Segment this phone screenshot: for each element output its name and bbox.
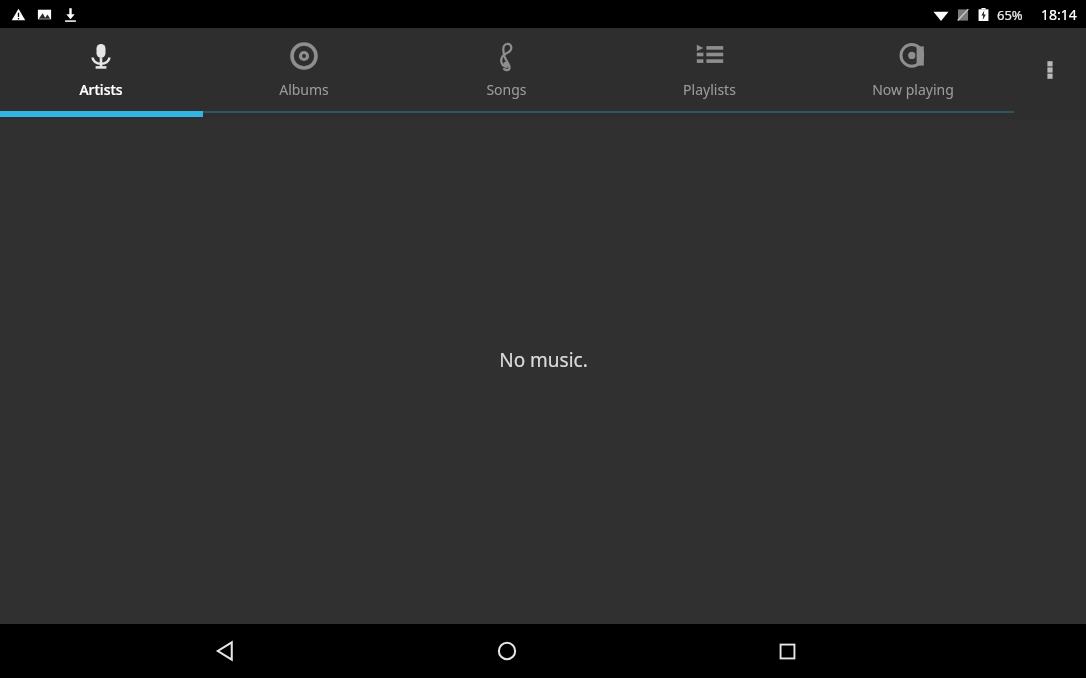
staticText: Now playing [872,80,954,99]
staticText: No music. [499,347,588,373]
button[interactable]: Albums [202,28,405,111]
button[interactable]: Artists [0,28,202,111]
button[interactable]: More options [1014,28,1086,111]
staticText: Songs [486,80,527,99]
staticText: Playlists [683,80,736,99]
staticText: 65% [997,6,1023,24]
staticText: Albums [279,80,329,99]
button[interactable]: Playlists [608,28,811,111]
staticText: Artists [79,80,123,99]
button[interactable]: Recents [697,624,878,678]
button[interactable]: Songs [405,28,608,111]
button[interactable]: Home [416,624,597,678]
button[interactable]: Back [135,624,316,678]
button[interactable]: Now playing [811,28,1014,111]
staticText: 18:14 [1041,5,1077,24]
